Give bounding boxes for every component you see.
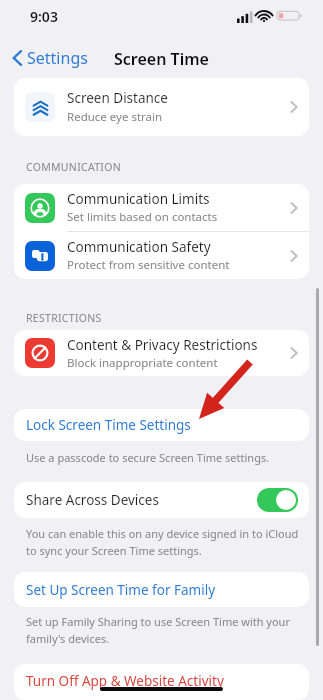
button[interactable]: Screen Distance xyxy=(14,78,309,136)
staticText: Communication Limits xyxy=(67,190,210,208)
button[interactable]: Turn Off App & Website Activity xyxy=(14,664,309,700)
staticText: Screen Time xyxy=(114,48,209,70)
staticText: family's devices. xyxy=(26,631,110,646)
staticText: Turn Off App & Website Activity xyxy=(26,672,224,690)
staticText: Screen Distance xyxy=(67,89,168,107)
staticText: 9:03 xyxy=(30,7,58,26)
button[interactable]: Share Across Devices xyxy=(14,482,309,518)
staticText: Reduce eye strain xyxy=(67,109,163,125)
button[interactable]: Settings xyxy=(8,44,92,72)
staticText: Block inappropriate content xyxy=(67,355,218,371)
staticText: Share Across Devices xyxy=(26,491,257,509)
staticText: Lock Screen Time Settings xyxy=(26,416,191,434)
button[interactable]: Lock Screen Time Settings xyxy=(14,409,309,441)
button[interactable]: Communication Limits xyxy=(14,184,309,231)
staticText: to sync your Screen Time settings. xyxy=(26,543,202,558)
button[interactable]: Content & Privacy Restrictions xyxy=(14,330,309,376)
staticText: COMMUNICATION xyxy=(26,160,121,174)
button[interactable]: Communication Safety xyxy=(14,232,309,279)
staticText: Content & Privacy Restrictions xyxy=(67,336,258,354)
staticText: Set up Family Sharing to use Screen Time… xyxy=(26,614,290,629)
staticText: Use a passcode to secure Screen Time set… xyxy=(26,450,270,465)
staticText: Settings xyxy=(27,47,88,69)
staticText: Set limits based on contacts xyxy=(67,209,218,225)
staticText: Protect from sensitive content xyxy=(67,257,230,273)
staticText: Communication Safety xyxy=(67,238,211,256)
staticText: RESTRICTIONS xyxy=(26,311,102,325)
button[interactable]: Set Up Screen Time for Family xyxy=(14,572,309,607)
staticText: You can enable this on any device signed… xyxy=(26,526,299,541)
staticText: Set Up Screen Time for Family xyxy=(26,581,216,599)
